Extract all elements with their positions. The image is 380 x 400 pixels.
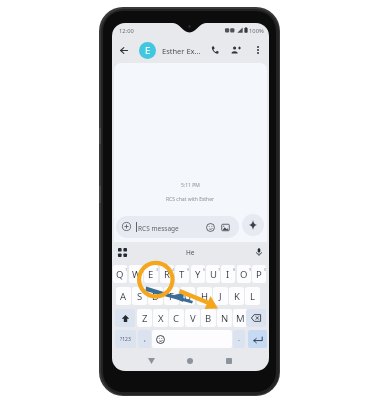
button[interactable]: E <box>139 42 156 59</box>
staticText: T <box>179 268 185 281</box>
staticText: P <box>256 268 262 281</box>
button[interactable]: Shift <box>115 309 135 327</box>
button[interactable]: G <box>180 287 195 305</box>
staticText: O <box>240 268 248 281</box>
button[interactable]: V <box>185 309 200 327</box>
staticText: 2 <box>141 267 143 272</box>
staticText: 9 <box>249 267 251 272</box>
button[interactable]: Home <box>182 353 198 369</box>
button[interactable]: Backspace <box>246 309 266 327</box>
button[interactable]: M <box>233 309 248 327</box>
staticText: RCS message <box>138 224 179 233</box>
button[interactable]: B <box>201 309 216 327</box>
staticText: K <box>234 290 240 303</box>
button[interactable]: E <box>144 265 158 283</box>
staticText: J <box>219 290 222 303</box>
button[interactable]: Back <box>143 353 159 369</box>
staticText: I <box>226 268 230 281</box>
staticText: N <box>221 312 229 325</box>
staticText: Z <box>142 312 148 325</box>
staticText: A <box>120 290 127 303</box>
staticText: L <box>250 290 255 303</box>
staticText: E <box>145 44 151 57</box>
staticText: C <box>173 312 180 325</box>
button[interactable]: N <box>217 309 232 327</box>
button[interactable]: Recents <box>221 353 237 369</box>
button[interactable]: O <box>237 265 251 283</box>
staticText: RCS chat with Esther <box>166 196 215 203</box>
staticText: W <box>132 268 141 281</box>
button[interactable]: Y <box>191 265 205 283</box>
staticText: 8 <box>233 267 235 272</box>
staticText: 4 <box>172 267 174 272</box>
staticText: V <box>190 312 196 325</box>
button[interactable]: Q <box>113 265 127 283</box>
staticText: Esther Ex... <box>162 46 201 56</box>
button[interactable]: Apps <box>115 245 129 259</box>
button[interactable]: T <box>175 265 189 283</box>
staticText: 1 <box>125 267 127 272</box>
button[interactable]: RCS message <box>116 216 239 238</box>
button[interactable]: D <box>148 287 163 305</box>
button[interactable]: W <box>129 265 143 283</box>
staticText: 3 <box>156 267 158 272</box>
button[interactable]: K <box>229 287 244 305</box>
button[interactable]: I <box>221 265 235 283</box>
button[interactable]: C <box>169 309 184 327</box>
staticText: G <box>184 290 191 303</box>
button[interactable]: Z <box>137 309 152 327</box>
staticText: E <box>148 268 154 281</box>
staticText: H <box>201 290 209 303</box>
button[interactable]: L <box>245 287 260 305</box>
button[interactable]: P <box>252 265 266 283</box>
button[interactable]: R <box>160 265 174 283</box>
button[interactable]: J <box>213 287 228 305</box>
button[interactable]: More options <box>250 42 266 58</box>
button[interactable]: Call <box>207 42 223 58</box>
staticText: U <box>210 268 217 281</box>
button[interactable]: Enter <box>248 330 267 348</box>
button[interactable]: Add person <box>228 42 244 58</box>
button[interactable]: X <box>153 309 168 327</box>
button[interactable]: Magic compose <box>242 214 264 236</box>
button[interactable]: F <box>164 287 179 305</box>
staticText: B <box>205 312 212 325</box>
staticText: D <box>152 290 159 303</box>
staticText: 100% <box>249 27 264 35</box>
button[interactable]: Period <box>233 330 245 348</box>
button[interactable]: Gallery <box>220 222 231 233</box>
button[interactable]: Symbols <box>115 330 136 348</box>
button[interactable]: Back <box>116 42 132 58</box>
staticText: ?123 <box>120 336 131 343</box>
button[interactable]: Comma <box>138 330 151 348</box>
staticText: . <box>238 334 240 344</box>
button[interactable]: Emoji <box>155 334 165 344</box>
staticText: 7 <box>218 267 220 272</box>
staticText: 5 <box>187 267 189 272</box>
button[interactable]: A <box>116 287 131 305</box>
staticText: R <box>164 268 170 281</box>
staticText: 0 <box>264 267 266 272</box>
staticText: M <box>236 312 245 325</box>
staticText: He <box>186 248 195 257</box>
button[interactable]: H <box>197 287 212 305</box>
staticText: 12:00 <box>119 27 134 35</box>
button[interactable]: Emoji <box>205 222 216 233</box>
button[interactable]: S <box>132 287 147 305</box>
button[interactable]: Space <box>152 330 232 348</box>
staticText: , <box>144 334 146 344</box>
staticText: S <box>137 290 143 303</box>
staticText: Q <box>116 268 124 281</box>
staticText: Y <box>195 268 201 281</box>
staticText: 5:11 PM <box>181 182 200 189</box>
staticText: F <box>169 290 174 303</box>
button[interactable]: Voice input <box>252 245 266 259</box>
button[interactable]: U <box>206 265 220 283</box>
staticText: X <box>158 312 164 325</box>
staticText: 6 <box>203 267 205 272</box>
